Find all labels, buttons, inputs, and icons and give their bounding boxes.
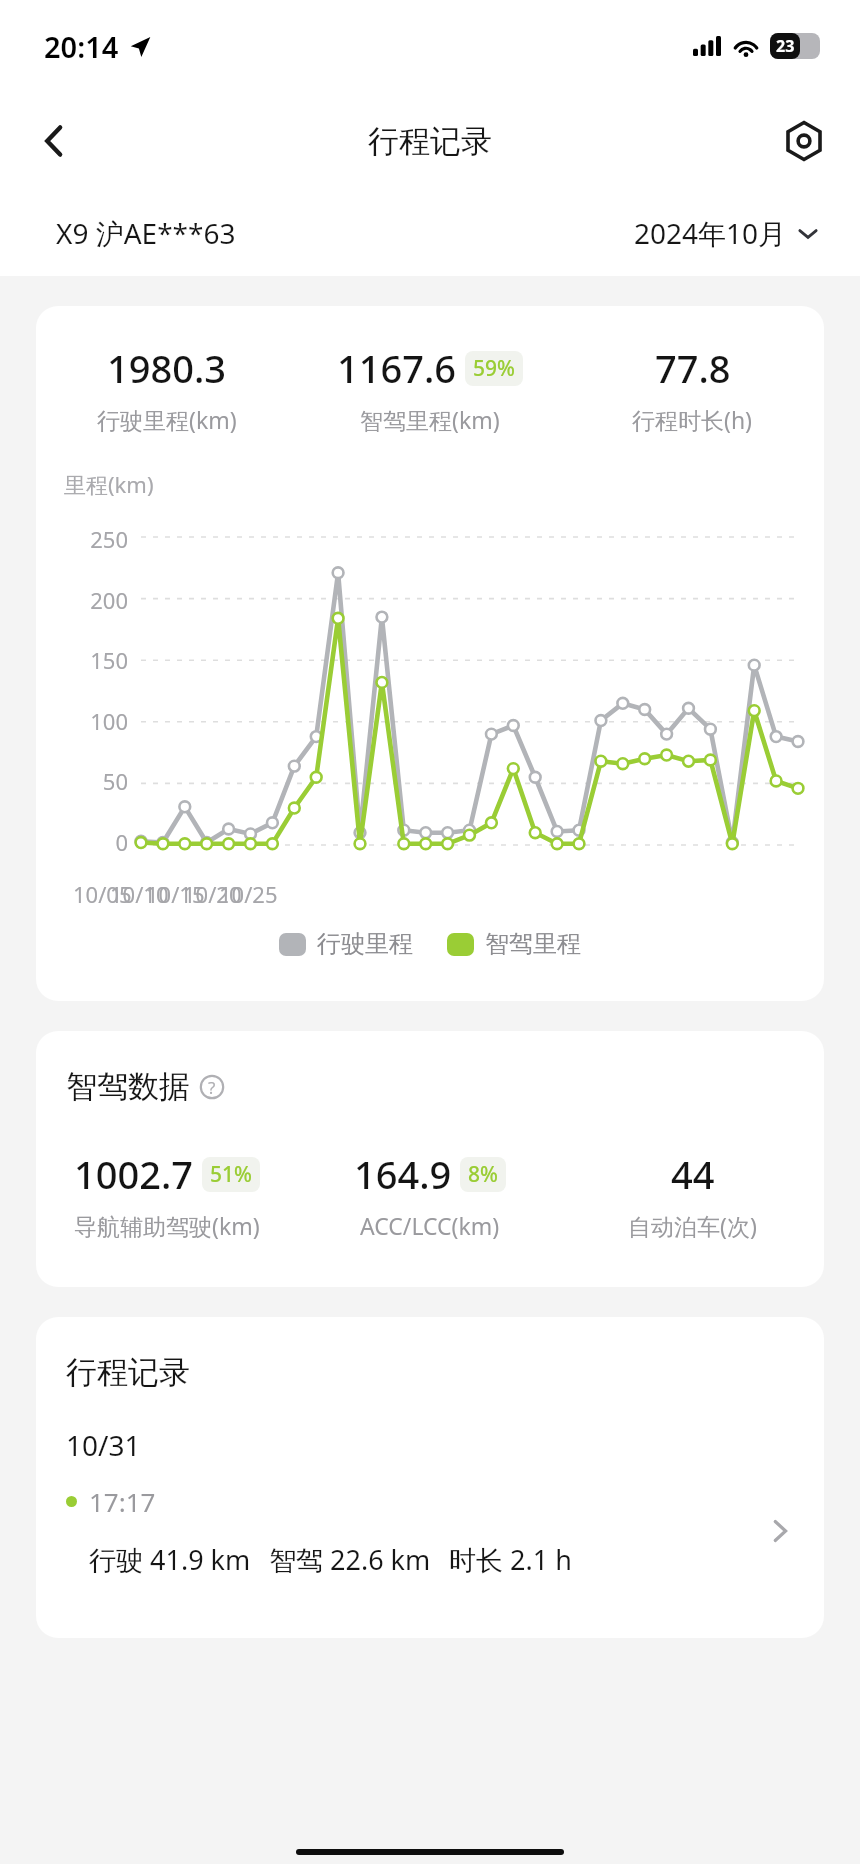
staticText: 智驾里程 <box>485 929 581 959</box>
staticText: 10/15 <box>146 879 205 909</box>
staticText: 行驶里程(km) <box>97 404 237 435</box>
staticText: 1980.3 <box>107 342 227 394</box>
staticText: 59% <box>473 354 515 383</box>
staticText: ? <box>208 1076 216 1099</box>
staticText: 智驾数据 <box>66 1067 190 1106</box>
staticText: 10/25 <box>219 879 278 909</box>
staticText: 100 <box>90 706 128 736</box>
staticText: 时长 2.1 h <box>449 1541 572 1578</box>
button[interactable]: Settings <box>774 111 834 171</box>
staticText: 行程时长(h) <box>632 404 753 435</box>
button[interactable]: 智驾里程 <box>447 929 581 959</box>
button[interactable]: Back <box>24 111 84 171</box>
staticText: 164.9 <box>354 1148 452 1200</box>
staticText: 1002.7 <box>74 1148 194 1200</box>
staticText: 行程记录 <box>66 1353 190 1392</box>
staticText: 0 <box>115 827 128 857</box>
staticText: 44 <box>671 1148 715 1200</box>
staticText: 51% <box>210 1160 252 1189</box>
staticText: 150 <box>90 645 128 675</box>
staticText: 导航辅助驾驶(km) <box>74 1210 260 1241</box>
staticText: 1167.6 <box>337 342 457 394</box>
staticText: 2024年10月 <box>634 214 787 252</box>
staticText: 10/05 <box>73 879 132 909</box>
staticText: 智驾里程(km) <box>360 404 500 435</box>
staticText: 行程记录 <box>368 122 492 161</box>
button[interactable]: 行驶里程 <box>279 929 413 959</box>
staticText: 10/10 <box>110 879 169 909</box>
staticText: 行驶里程 <box>317 929 413 959</box>
staticText: 250 <box>90 524 128 554</box>
staticText: 77.8 <box>655 342 731 394</box>
staticText: 17:17 <box>89 1484 156 1519</box>
staticText: 自动泊车(次) <box>628 1210 757 1241</box>
staticText: 10/31 <box>66 1426 141 1464</box>
staticText: 23 <box>776 35 795 57</box>
staticText: 20:14 <box>44 27 119 66</box>
button[interactable]: Info <box>198 1073 226 1101</box>
button[interactable]: 2024年10月 <box>634 214 820 252</box>
button[interactable]: 17:17 <box>36 1484 824 1578</box>
staticText: 50 <box>102 766 128 796</box>
staticText: 8% <box>468 1160 498 1189</box>
staticText: 10/20 <box>183 879 242 909</box>
staticText: 行驶 41.9 km <box>89 1541 251 1578</box>
staticText: ACC/LCC(km) <box>360 1210 500 1241</box>
staticText: 200 <box>90 585 128 615</box>
staticText: 里程(km) <box>64 469 154 499</box>
staticText: X9 沪AE***63 <box>56 214 236 252</box>
staticText: 智驾 22.6 km <box>269 1541 431 1578</box>
